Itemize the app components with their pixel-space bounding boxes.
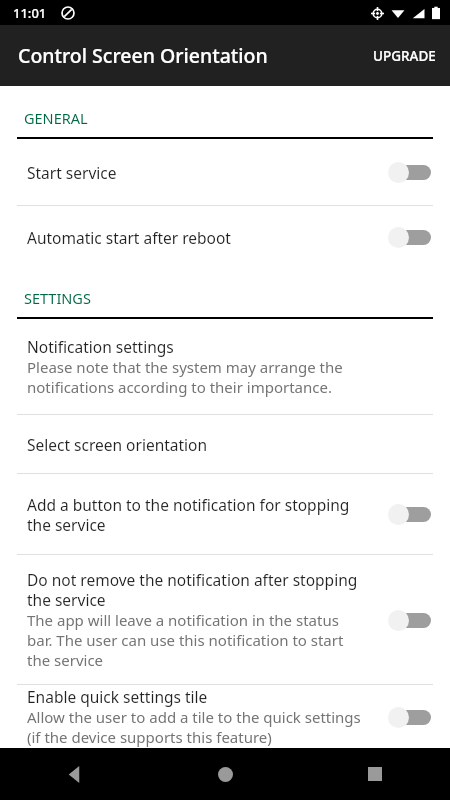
staticText: Start service [27,162,117,183]
staticText: Enable quick settings tile [27,686,208,707]
button[interactable]: Automatic start after reboot [0,206,450,268]
staticText: Automatic start after reboot [27,227,231,248]
button[interactable]: Back [0,766,150,783]
staticText: Notification settings [27,336,174,357]
button[interactable]: Toggle [388,224,432,250]
button[interactable]: Enable quick settings tile [0,685,450,748]
staticText: Please note that the system may arrange … [27,357,430,397]
button[interactable]: Toggle [388,501,432,527]
staticText: Do not remove the notification after sto… [27,569,362,610]
button[interactable]: Toggle [388,704,432,730]
staticText: GENERAL [24,108,88,128]
staticText: 11:01 [13,4,47,22]
staticText: Select screen orientation [27,434,208,455]
button[interactable]: Add a button to the notification for sto… [0,474,450,554]
button[interactable]: Recent apps [300,767,450,781]
staticText: UPGRADE [373,47,436,65]
button[interactable]: Start service [0,139,450,205]
button[interactable]: Toggle [388,159,432,185]
staticText: The app will leave a notification in the… [27,610,362,670]
staticText: Allow the user to add a tile to the quic… [27,707,372,747]
button[interactable]: Toggle [388,607,432,633]
staticText: Control Screen Orientation [18,42,268,69]
staticText: Add a button to the notification for sto… [27,494,362,535]
button[interactable]: Do not remove the notification after sto… [0,555,450,684]
button[interactable]: Select screen orientation [0,415,450,473]
button[interactable]: UPGRADE [359,33,450,79]
staticText: SETTINGS [24,288,91,308]
button[interactable]: Home [150,767,300,782]
button[interactable]: Notification settings [0,319,450,414]
